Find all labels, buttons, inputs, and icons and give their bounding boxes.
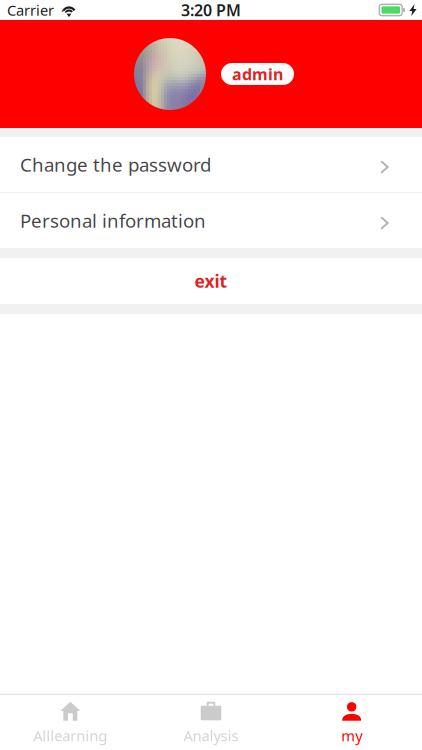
staticText: Analysis bbox=[183, 726, 238, 745]
button[interactable]: Change the password bbox=[0, 137, 422, 192]
staticText: Change the password bbox=[20, 152, 211, 177]
staticText: Carrier bbox=[7, 0, 54, 20]
staticText: exit bbox=[194, 269, 227, 292]
button[interactable]: exit bbox=[0, 258, 422, 304]
staticText: Alllearning bbox=[33, 726, 107, 745]
staticText: 3:20 PM bbox=[181, 0, 241, 21]
staticText: admin bbox=[232, 63, 283, 85]
staticText: my bbox=[341, 726, 362, 745]
staticText: Personal information bbox=[20, 208, 206, 233]
button[interactable]: Analysis bbox=[141, 695, 281, 750]
button[interactable]: Alllearning bbox=[0, 695, 141, 750]
button[interactable]: my bbox=[281, 695, 422, 750]
button[interactable]: Personal information bbox=[0, 193, 422, 248]
button[interactable]: admin bbox=[221, 63, 294, 85]
